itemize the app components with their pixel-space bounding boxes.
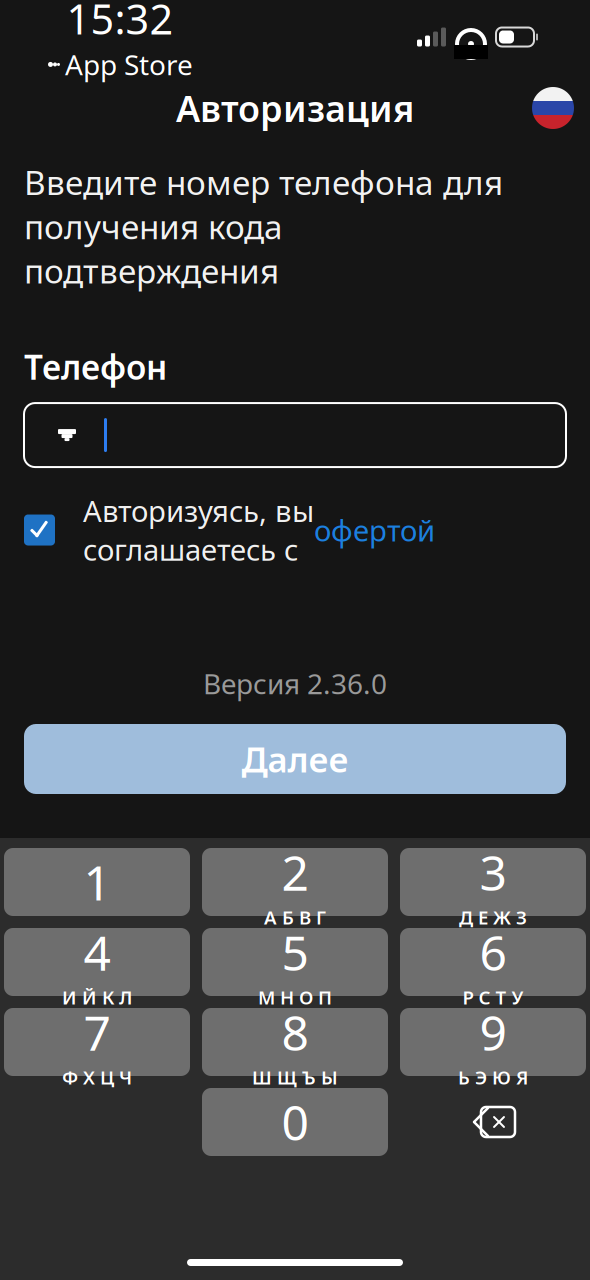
button[interactable]: Номер телефона — [24, 403, 566, 467]
staticText: App Store — [65, 46, 193, 83]
staticText: 2 — [281, 840, 308, 904]
staticText: Ь Э Ю Я — [458, 1065, 528, 1090]
staticText: М Н О П — [258, 985, 332, 1010]
staticText: 4 — [83, 920, 110, 984]
button[interactable]: 1 — [4, 848, 190, 916]
staticText: 1 — [83, 850, 110, 914]
staticText: Введите номер телефона для получения код… — [24, 160, 503, 293]
button[interactable]: Выбрать язык — [532, 87, 590, 129]
button[interactable]: Удалить — [400, 1088, 586, 1156]
staticText: А Б В Г — [264, 905, 326, 930]
button[interactable]: 3 — [400, 848, 586, 916]
staticText: Авторизация — [176, 84, 414, 132]
staticText: 9 — [479, 1000, 506, 1064]
button[interactable]: 2 — [202, 848, 388, 916]
staticText: Р С Т У — [462, 985, 523, 1010]
button[interactable]: 6 — [400, 928, 586, 996]
staticText: 7 — [83, 1000, 110, 1064]
staticText: И Й К Л — [62, 985, 132, 1010]
button[interactable]: Согласие с офертой — [24, 514, 55, 545]
staticText: Далее — [241, 736, 348, 782]
staticText: офертой — [314, 510, 435, 549]
staticText: Д Е Ж З — [459, 905, 527, 930]
button[interactable]: 7 — [4, 1008, 190, 1076]
button[interactable]: 4 — [4, 928, 190, 996]
button[interactable]: 0 — [202, 1088, 388, 1156]
button[interactable]: 9 — [400, 1008, 586, 1076]
button[interactable]: 5 — [202, 928, 388, 996]
staticText: Ф Х Ц Ч — [62, 1065, 132, 1090]
button[interactable]: 8 — [202, 1008, 388, 1076]
staticText: 15:32 — [66, 0, 173, 46]
staticText: Ш Щ Ъ Ы — [252, 1065, 338, 1090]
staticText: 8 — [281, 1000, 308, 1064]
button[interactable]: офертой — [314, 510, 435, 549]
staticText: Авторизуясь, вы соглашаетесь с — [83, 491, 314, 569]
staticText: 6 — [479, 920, 506, 984]
staticText: Телефон — [24, 345, 167, 389]
staticText: Версия 2.36.0 — [203, 665, 387, 702]
staticText: 0 — [281, 1090, 308, 1154]
staticText: 5 — [281, 920, 308, 984]
button[interactable]: Далее — [24, 724, 566, 794]
staticText: 3 — [479, 840, 506, 904]
